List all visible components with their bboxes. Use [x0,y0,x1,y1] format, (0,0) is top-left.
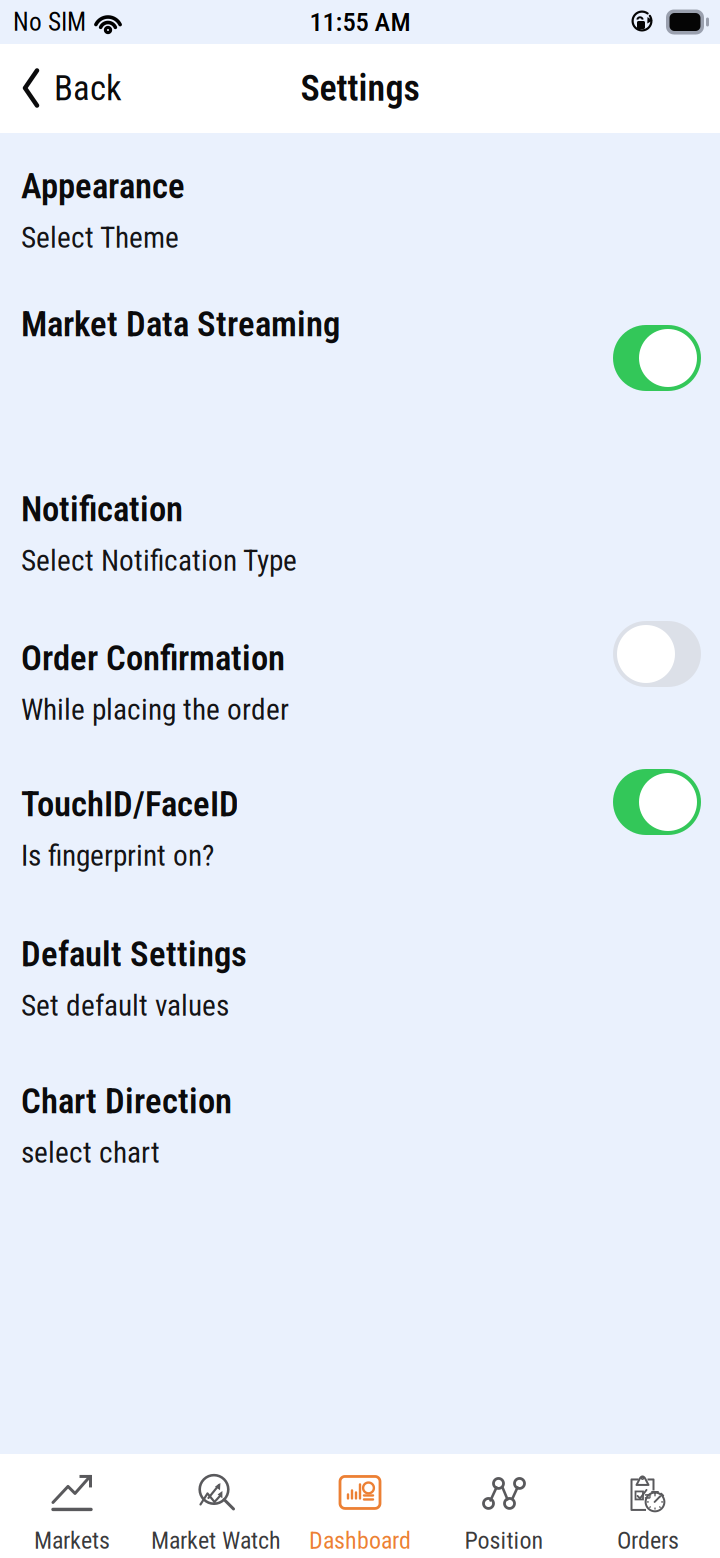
staticText: Set default values [21,989,229,1023]
staticText: Chart Direction [21,1081,232,1122]
staticText: Default Settings [21,934,247,975]
button[interactable]: Dashboard [288,1445,432,1558]
button[interactable]: Markets [0,1445,144,1558]
staticText: Order Confirmation [21,638,285,679]
staticText: Orders [617,1526,679,1554]
button[interactable]: Orders [576,1445,720,1558]
staticText: Is fingerprint on? [21,839,214,873]
button[interactable]: Appearance [0,166,720,255]
staticText: select chart [21,1136,160,1170]
staticText: No SIM [13,7,86,37]
staticText: Notification [21,489,183,530]
staticText: Select Notification Type [21,544,297,578]
staticText: Appearance [21,166,185,207]
staticText: TouchID/FaceID [21,784,239,825]
button[interactable]: Position [432,1445,576,1558]
button[interactable]: Back [0,58,138,119]
staticText: 11:55 AM [309,6,410,38]
staticText: Market Watch [151,1526,281,1554]
staticText: Settings [300,67,419,110]
button[interactable]: Market Watch [144,1445,288,1558]
button[interactable]: Order Confirmation [0,638,720,727]
staticText: Back [54,68,122,109]
staticText: Dashboard [309,1526,411,1554]
staticText: Markets [34,1526,110,1554]
button[interactable]: Market Data Streaming [0,304,720,391]
staticText: Market Data Streaming [21,304,340,345]
button[interactable]: Notification [0,489,720,578]
staticText: Position [464,1526,543,1554]
staticText: While placing the order [21,693,289,727]
staticText: Select Theme [21,221,179,255]
button[interactable]: Chart Direction [0,1081,720,1170]
button[interactable]: Default Settings [0,934,720,1023]
button[interactable]: TouchID/FaceID [0,784,720,873]
